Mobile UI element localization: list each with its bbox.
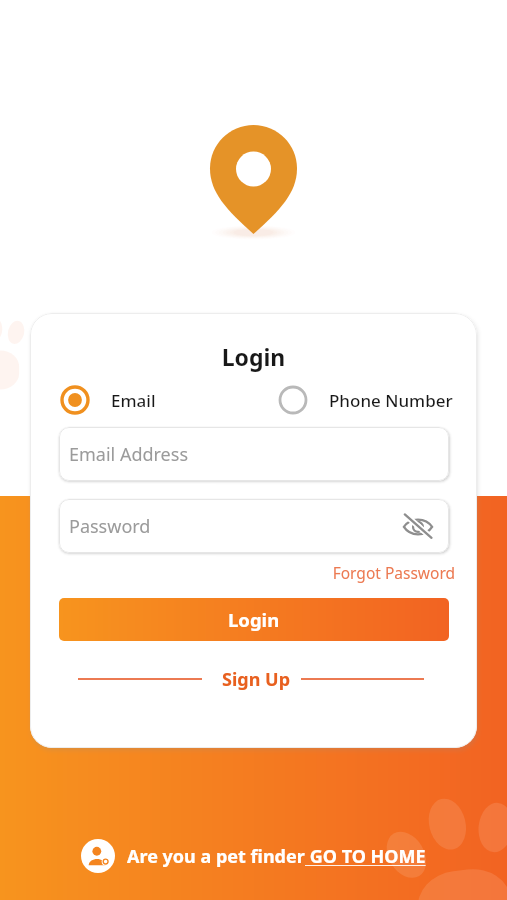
button[interactable]: Phone Number [278,385,453,415]
button[interactable]: Sign Up [202,665,301,693]
button[interactable]: Login [59,598,449,641]
button[interactable]: Are you a pet finder [81,836,426,876]
staticText: Email Address [69,442,189,467]
staticText: GO TO HOME [305,844,426,869]
staticText: Password [69,514,151,539]
button[interactable]: Email Address [59,427,449,481]
staticText: Sign Up [222,667,291,692]
staticText: Login [30,341,477,372]
staticText: Email [111,389,156,412]
staticText: Phone Number [329,389,453,412]
staticText: Login [228,607,280,632]
button[interactable]: Email [60,385,156,415]
button[interactable]: Password [59,499,449,553]
staticText: Are you a pet finder [127,844,305,869]
button[interactable]: Show password [401,509,435,543]
button[interactable]: Forgot Password [30,562,455,583]
